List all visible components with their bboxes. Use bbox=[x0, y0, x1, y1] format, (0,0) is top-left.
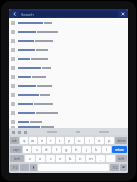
button[interactable]: Microphone bbox=[30, 164, 37, 171]
button[interactable] bbox=[9, 90, 128, 99]
button[interactable]: shift bbox=[116, 155, 127, 162]
button[interactable]: Clear search bbox=[119, 10, 126, 17]
staticText: q bbox=[23, 138, 26, 143]
staticText: delete bbox=[117, 139, 126, 143]
staticText: u bbox=[78, 138, 81, 143]
button[interactable]: p bbox=[105, 137, 114, 144]
button[interactable] bbox=[9, 45, 128, 54]
staticText: .?12 bbox=[112, 166, 118, 170]
staticText: shift bbox=[14, 157, 21, 161]
button[interactable]: Hide keyboard bbox=[120, 164, 127, 171]
button[interactable]: e bbox=[38, 137, 46, 144]
staticText: return bbox=[115, 148, 124, 152]
button[interactable]: c bbox=[46, 155, 55, 162]
button[interactable]: y bbox=[65, 137, 74, 144]
staticText: i bbox=[89, 138, 91, 143]
button[interactable]: j bbox=[82, 146, 91, 153]
staticText: Search bbox=[21, 12, 34, 17]
button[interactable]: v bbox=[56, 155, 65, 162]
staticText: l bbox=[106, 147, 108, 152]
staticText: k bbox=[95, 147, 98, 152]
staticText: caps bbox=[13, 148, 20, 152]
button[interactable] bbox=[9, 54, 128, 63]
button[interactable] bbox=[9, 18, 128, 27]
button[interactable]: tab bbox=[10, 137, 19, 144]
button[interactable] bbox=[9, 99, 128, 108]
button[interactable]: u bbox=[75, 137, 84, 144]
staticText: a bbox=[26, 147, 29, 152]
button[interactable]: q bbox=[20, 137, 28, 144]
button[interactable]: .?12 bbox=[110, 164, 119, 171]
staticText: c bbox=[50, 156, 52, 161]
button[interactable]: n bbox=[76, 155, 85, 162]
button[interactable]: return bbox=[112, 146, 127, 153]
staticText: .?12 bbox=[12, 166, 18, 170]
button[interactable]: k bbox=[92, 146, 101, 153]
button[interactable]: Keyboard tool bbox=[11, 130, 15, 134]
button[interactable]: Back bbox=[11, 10, 18, 17]
button[interactable]: w bbox=[29, 137, 37, 144]
button[interactable]: . bbox=[106, 155, 115, 162]
staticText: e bbox=[41, 138, 44, 143]
button[interactable]: caps bbox=[10, 146, 22, 153]
button[interactable]: , bbox=[96, 155, 105, 162]
staticText: s bbox=[36, 147, 38, 152]
staticText: x bbox=[39, 156, 42, 161]
staticText: d bbox=[45, 147, 48, 152]
button[interactable]: z bbox=[25, 155, 35, 162]
button[interactable]: a bbox=[23, 146, 31, 153]
button[interactable]: h bbox=[72, 146, 81, 153]
staticText: p bbox=[108, 138, 111, 143]
button[interactable]: l bbox=[102, 146, 111, 153]
button[interactable]: r bbox=[47, 137, 55, 144]
button[interactable]: s bbox=[32, 146, 41, 153]
button[interactable]: m bbox=[86, 155, 95, 162]
staticText: f bbox=[56, 147, 58, 152]
button[interactable] bbox=[9, 27, 128, 36]
button[interactable]: .?12 bbox=[10, 164, 19, 171]
staticText: b bbox=[69, 156, 72, 161]
staticText: j bbox=[86, 147, 88, 152]
staticText: t bbox=[59, 138, 61, 143]
staticText: m bbox=[89, 156, 93, 161]
button[interactable]: g bbox=[62, 146, 71, 153]
button[interactable] bbox=[9, 117, 128, 126]
staticText: n bbox=[79, 156, 82, 161]
button[interactable] bbox=[9, 81, 128, 90]
button[interactable]: delete bbox=[115, 137, 127, 144]
button[interactable] bbox=[9, 63, 128, 72]
staticText: r bbox=[50, 138, 52, 143]
button[interactable]: i bbox=[85, 137, 94, 144]
button[interactable]: Search bbox=[19, 11, 118, 17]
staticText: o bbox=[98, 138, 101, 143]
button[interactable]: b bbox=[66, 155, 75, 162]
button[interactable]: Keyboard tool bbox=[17, 130, 21, 134]
staticText: g bbox=[65, 147, 68, 152]
button[interactable]: Keyboard tool bbox=[23, 130, 27, 134]
staticText: y bbox=[68, 138, 71, 143]
button[interactable]: f bbox=[52, 146, 61, 153]
staticText: . bbox=[110, 156, 112, 161]
staticText: w bbox=[31, 138, 35, 143]
button[interactable] bbox=[9, 108, 128, 117]
button[interactable]: t bbox=[56, 137, 64, 144]
staticText: tab bbox=[12, 139, 17, 143]
staticText: z bbox=[29, 156, 31, 161]
button[interactable]: o bbox=[95, 137, 104, 144]
button[interactable]: d bbox=[42, 146, 51, 153]
button[interactable] bbox=[9, 72, 128, 81]
button[interactable]: x bbox=[36, 155, 45, 162]
staticText: shift bbox=[118, 157, 125, 161]
button[interactable] bbox=[9, 36, 128, 45]
staticText: h bbox=[75, 147, 78, 152]
button[interactable] bbox=[9, 126, 128, 128]
staticText: v bbox=[59, 156, 62, 161]
staticText: , bbox=[100, 156, 102, 161]
button[interactable]: shift bbox=[10, 155, 24, 162]
